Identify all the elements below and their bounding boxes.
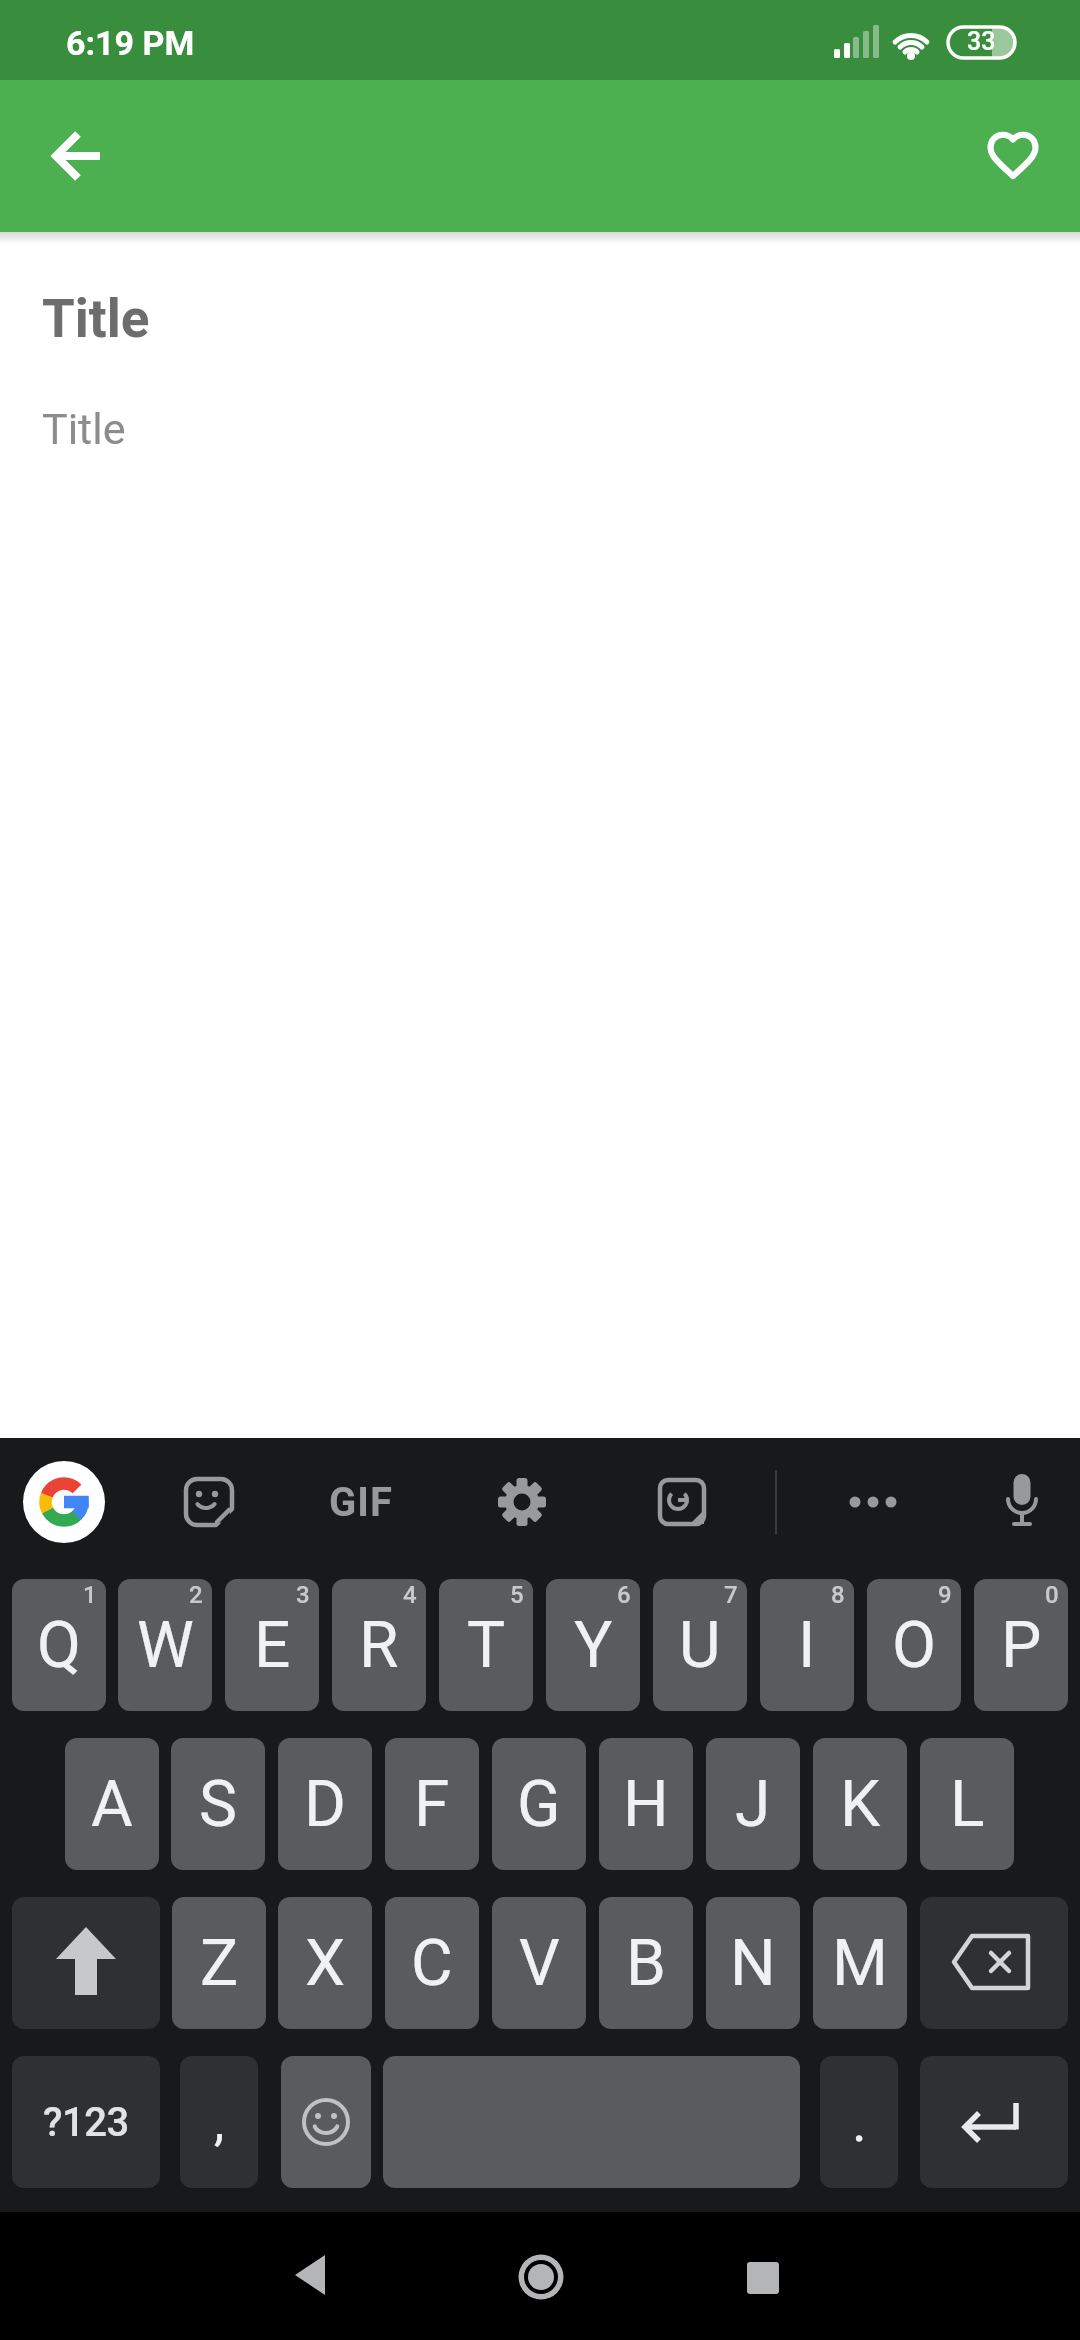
button[interactable] <box>978 1458 1066 1546</box>
staticText: ?123 <box>43 2099 129 2146</box>
button[interactable]: Q <box>12 1579 106 1711</box>
button[interactable]: J <box>706 1738 800 1870</box>
staticText: , <box>214 2092 225 2153</box>
staticText: 0 <box>1045 1581 1059 1609</box>
staticText: 8 <box>831 1581 845 1609</box>
button[interactable]: W <box>118 1579 212 1711</box>
button[interactable] <box>12 1897 160 2029</box>
staticText: 3 <box>296 1581 310 1609</box>
button[interactable]: U <box>653 1579 747 1711</box>
staticText: 1 <box>83 1581 97 1609</box>
button[interactable] <box>497 2232 585 2320</box>
staticText: T <box>467 1608 506 1683</box>
button[interactable]: E <box>225 1579 319 1711</box>
staticText: 5 <box>510 1581 524 1609</box>
staticText: GIF <box>329 1479 393 1526</box>
button[interactable] <box>20 1458 108 1546</box>
staticText: K <box>840 1767 881 1842</box>
button[interactable]: X <box>278 1897 372 2029</box>
staticText: G <box>517 1767 561 1842</box>
button[interactable]: L <box>920 1738 1014 1870</box>
staticText: C <box>411 1926 453 2001</box>
button[interactable]: V <box>492 1897 586 2029</box>
button[interactable] <box>165 1458 253 1546</box>
button[interactable] <box>478 1458 566 1546</box>
staticText: P <box>1001 1608 1042 1683</box>
button[interactable]: I <box>760 1579 854 1711</box>
staticText: 6:19 PM <box>66 23 195 63</box>
staticText: R <box>359 1608 399 1683</box>
staticText: I <box>798 1608 816 1683</box>
button[interactable] <box>920 1897 1068 2029</box>
staticText: J <box>735 1767 771 1842</box>
button[interactable] <box>281 2056 371 2188</box>
staticText: F <box>414 1767 450 1842</box>
button[interactable]: K <box>813 1738 907 1870</box>
staticText: Y <box>574 1608 613 1683</box>
staticText: D <box>304 1767 346 1842</box>
staticText: V <box>519 1926 560 2001</box>
button[interactable]: . <box>820 2056 898 2188</box>
button[interactable]: F <box>385 1738 479 1870</box>
staticText: O <box>892 1608 937 1683</box>
staticText: X <box>305 1926 346 2001</box>
button[interactable] <box>638 1458 726 1546</box>
staticText: N <box>730 1926 776 2001</box>
staticText: E <box>254 1608 291 1683</box>
staticText: Z <box>200 1926 239 2001</box>
staticText: Q <box>37 1608 82 1683</box>
staticText: A <box>91 1767 133 1842</box>
button[interactable]: ?123 <box>12 2056 160 2188</box>
staticText: Title <box>42 404 126 454</box>
button[interactable]: , <box>180 2056 258 2188</box>
staticText: H <box>623 1767 669 1842</box>
staticText: S <box>199 1767 237 1842</box>
staticText: L <box>950 1767 985 1842</box>
button[interactable] <box>271 2232 359 2320</box>
staticText: 2 <box>189 1581 203 1609</box>
staticText: W <box>137 1608 194 1683</box>
staticText: 9 <box>938 1581 952 1609</box>
button[interactable]: S <box>171 1738 265 1870</box>
staticText: 7 <box>724 1581 738 1609</box>
button[interactable]: Z <box>172 1897 266 2029</box>
button[interactable]: H <box>599 1738 693 1870</box>
button[interactable] <box>383 2056 800 2188</box>
staticText: B <box>626 1926 666 2001</box>
button[interactable]: P <box>974 1579 1068 1711</box>
button[interactable]: Y <box>546 1579 640 1711</box>
staticText: Title <box>42 288 150 350</box>
button[interactable]: O <box>867 1579 961 1711</box>
button[interactable] <box>33 112 121 200</box>
button[interactable]: A <box>65 1738 159 1870</box>
button[interactable]: B <box>599 1897 693 2029</box>
button[interactable]: N <box>706 1897 800 2029</box>
staticText: . <box>852 2089 867 2155</box>
staticText: 4 <box>403 1581 417 1609</box>
button[interactable]: G <box>492 1738 586 1870</box>
button[interactable]: R <box>332 1579 426 1711</box>
button[interactable] <box>829 1458 917 1546</box>
button[interactable] <box>719 2232 807 2320</box>
button[interactable] <box>920 2056 1068 2188</box>
button[interactable]: T <box>439 1579 533 1711</box>
button[interactable]: C <box>385 1897 479 2029</box>
staticText: M <box>832 1926 888 2001</box>
staticText: U <box>679 1608 721 1683</box>
staticText: 33 <box>967 27 996 56</box>
button[interactable] <box>969 111 1057 199</box>
button[interactable]: M <box>813 1897 907 2029</box>
button[interactable]: GIF <box>317 1458 405 1546</box>
staticText: 6 <box>617 1581 631 1609</box>
button[interactable]: D <box>278 1738 372 1870</box>
